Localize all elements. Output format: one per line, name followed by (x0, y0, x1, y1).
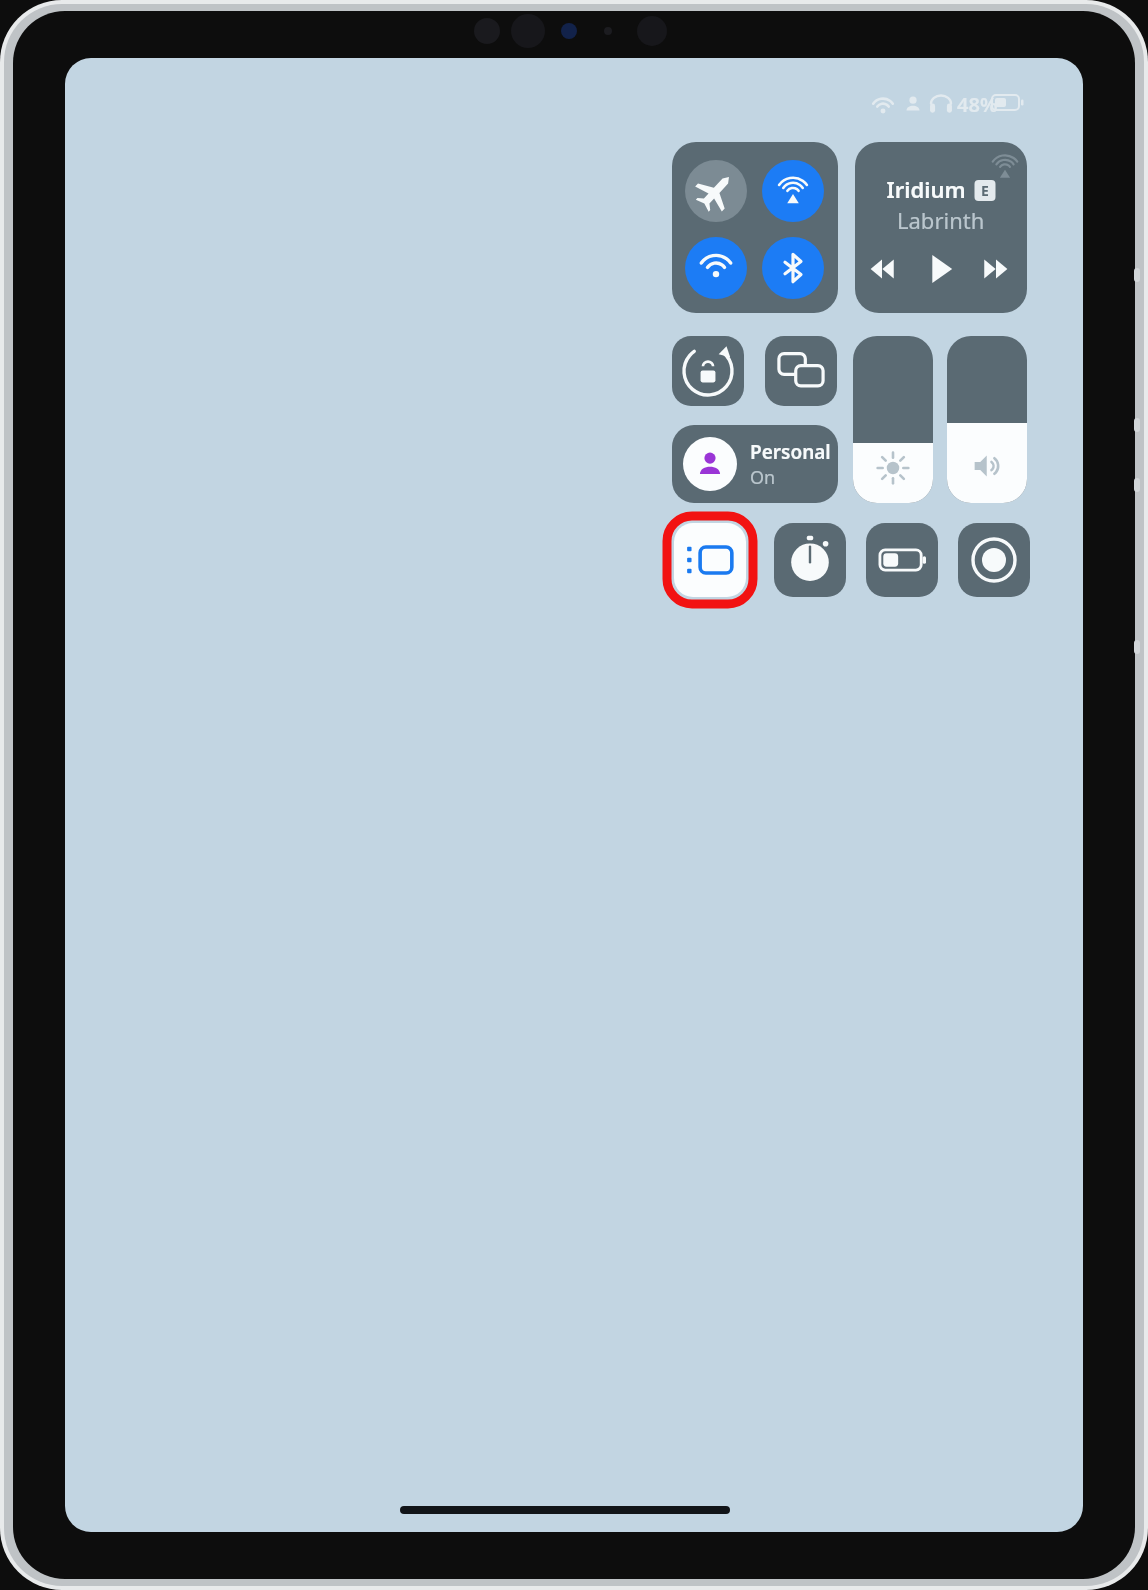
button[interactable]: Personal Focus, On (671, 424, 837, 501)
button[interactable]: Volume (947, 335, 1027, 501)
button[interactable]: Screen Recording (957, 523, 1029, 597)
button[interactable]: Screen Mirroring (764, 335, 836, 404)
button[interactable]: Stage Manager (673, 523, 745, 597)
button[interactable]: Rotation Lock (671, 335, 743, 404)
button[interactable]: Brightness (852, 335, 932, 501)
button[interactable]: Now Playing: Iridium by Labrinth (855, 141, 1027, 312)
button[interactable]: Connectivity controls (671, 141, 837, 312)
button[interactable]: Timer (773, 523, 845, 597)
button[interactable]: Low Power Mode (865, 523, 937, 597)
